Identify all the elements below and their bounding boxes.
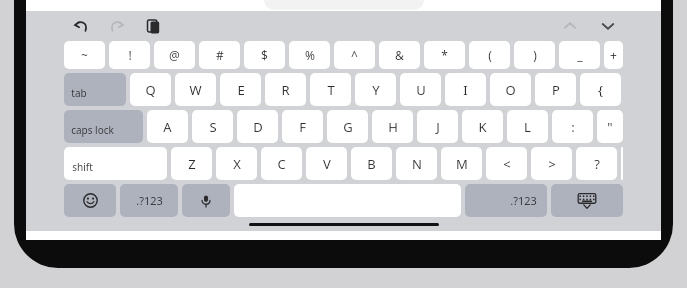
button[interactable]: X (216, 147, 257, 180)
button[interactable]: I (445, 73, 486, 106)
button[interactable]: V (306, 147, 347, 180)
staticText: ^ (351, 47, 358, 63)
button[interactable]: A (147, 110, 188, 143)
button[interactable]: { (580, 73, 621, 106)
staticText: D (253, 118, 263, 136)
button[interactable]: P (535, 73, 576, 106)
button[interactable]: < (486, 147, 527, 180)
button[interactable]: + (604, 41, 623, 69)
button[interactable]: Emoji (64, 184, 116, 217)
staticText: ! (128, 47, 132, 63)
button[interactable]: H (372, 110, 413, 143)
button[interactable]: tab (64, 73, 126, 106)
button[interactable]: M (441, 147, 482, 180)
button[interactable]: _ (559, 41, 600, 69)
staticText: U (416, 81, 426, 99)
button[interactable]: Hide keyboard (551, 184, 623, 217)
button[interactable]: D (237, 110, 278, 143)
staticText: + (610, 47, 617, 63)
button[interactable]: B (351, 147, 392, 180)
button[interactable]: % (289, 41, 330, 69)
button[interactable]: K (462, 110, 503, 143)
staticText: shift (72, 160, 93, 174)
staticText: < (503, 155, 511, 173)
button[interactable]: Redo (106, 15, 128, 37)
button[interactable]: $ (244, 41, 285, 69)
staticText: N (412, 155, 422, 173)
staticText: P (552, 81, 560, 99)
staticText: caps lock (71, 123, 114, 137)
staticText: : (571, 118, 575, 136)
staticText: " (607, 118, 613, 136)
button[interactable]: Undo (70, 15, 92, 37)
button[interactable]: T (310, 73, 351, 106)
button[interactable]: ! (109, 41, 150, 69)
button[interactable]: N (396, 147, 437, 180)
staticText: G (343, 118, 353, 136)
button[interactable]: Previous field (559, 15, 581, 37)
button[interactable]: > (531, 147, 572, 180)
button[interactable]: Next field (597, 15, 619, 37)
button[interactable]: F (282, 110, 323, 143)
button[interactable]: U (400, 73, 441, 106)
staticText: K (478, 118, 487, 136)
button[interactable]: .?123 (120, 184, 178, 217)
button[interactable]: ^ (334, 41, 375, 69)
staticText: ( (488, 47, 492, 63)
button[interactable]: Q (130, 73, 171, 106)
staticText: E (237, 81, 245, 99)
button[interactable]: .?123 (465, 184, 547, 217)
staticText: _ (577, 47, 583, 63)
staticText: # (216, 47, 224, 63)
button[interactable]: J (417, 110, 458, 143)
staticText: A (163, 118, 172, 136)
staticText: V (323, 155, 331, 173)
button[interactable]: G (327, 110, 368, 143)
staticText: > (548, 155, 556, 173)
button[interactable]: E (220, 73, 261, 106)
button[interactable]: Y (355, 73, 396, 106)
button[interactable]: shift (64, 147, 167, 180)
button[interactable]: ~ (64, 41, 105, 69)
button[interactable]: S (192, 110, 233, 143)
staticText: H (388, 118, 398, 136)
button[interactable]: O (490, 73, 531, 106)
button[interactable]: Paste (142, 15, 164, 37)
staticText: R (281, 81, 290, 99)
staticText: ? (594, 155, 600, 173)
button[interactable]: Dictate (182, 184, 230, 217)
button[interactable]: ) (514, 41, 555, 69)
button[interactable]: # (199, 41, 240, 69)
staticText: ~ (81, 47, 88, 63)
button[interactable]: W (175, 73, 216, 106)
button[interactable]: caps lock (64, 110, 143, 143)
staticText: S (209, 118, 217, 136)
staticText: .?123 (510, 193, 537, 208)
staticText: W (189, 81, 202, 99)
staticText: .?123 (136, 193, 163, 208)
staticText: C (277, 155, 286, 173)
button[interactable]: Z (171, 147, 212, 180)
button[interactable]: L (507, 110, 548, 143)
button[interactable]: : (552, 110, 593, 143)
button[interactable]: R (265, 73, 306, 106)
staticText: & (395, 47, 404, 63)
button[interactable]: @ (154, 41, 195, 69)
staticText: $ (261, 47, 268, 63)
staticText: M (456, 155, 468, 173)
button[interactable]: C (261, 147, 302, 180)
staticText: X (233, 155, 241, 173)
button[interactable]: " (597, 110, 623, 143)
button[interactable]: ? (576, 147, 617, 180)
staticText: J (436, 118, 440, 136)
button[interactable]: * (424, 41, 465, 69)
staticText: { (598, 81, 603, 99)
staticText: L (524, 118, 531, 136)
staticText: % (305, 47, 315, 63)
button[interactable]: ( (469, 41, 510, 69)
button[interactable]: & (379, 41, 420, 69)
staticText: ) (533, 47, 537, 63)
staticText: F (299, 118, 306, 136)
